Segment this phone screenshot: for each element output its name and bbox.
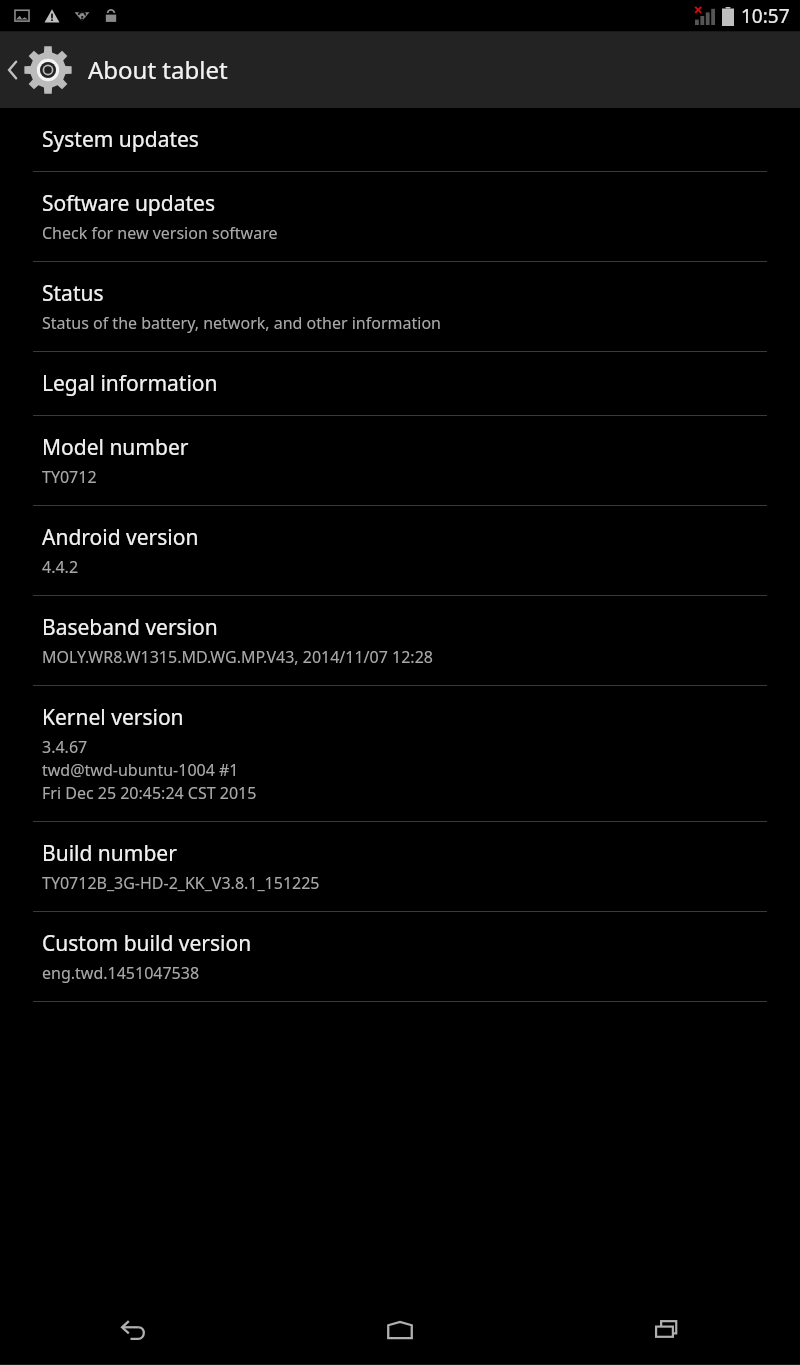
staticText: MOLY.WR8.W1315.MD.WG.MP.V43, 2014/11/07 … bbox=[42, 646, 433, 668]
button[interactable]: Recent apps bbox=[533, 1295, 800, 1365]
staticText: System updates bbox=[42, 125, 199, 154]
staticText: About tablet bbox=[88, 53, 228, 86]
button[interactable]: Model number bbox=[0, 416, 800, 505]
staticText: 10:57 bbox=[741, 3, 790, 29]
button[interactable]: Kernel version bbox=[0, 686, 800, 821]
staticText: TY0712B_3G-HD-2_KK_V3.8.1_151225 bbox=[42, 872, 320, 894]
button[interactable]: Back bbox=[0, 1295, 266, 1365]
button[interactable]: Android version bbox=[0, 506, 800, 595]
button[interactable]: Baseband version bbox=[0, 596, 800, 685]
button[interactable]: Software updates bbox=[0, 172, 800, 261]
staticText: Software updates bbox=[42, 189, 215, 218]
button[interactable]: Status bbox=[0, 262, 800, 351]
staticText: Kernel version bbox=[42, 703, 184, 732]
staticText: 3.4.67 bbox=[42, 736, 88, 758]
staticText: twd@twd-ubuntu-1004 #1 bbox=[42, 759, 239, 781]
staticText: TY0712 bbox=[42, 466, 97, 488]
button[interactable]: System updates bbox=[0, 108, 800, 171]
staticText: Custom build version bbox=[42, 929, 252, 958]
button[interactable]: Navigate up, About tablet bbox=[0, 31, 244, 108]
staticText: Fri Dec 25 20:45:24 CST 2015 bbox=[42, 782, 257, 804]
staticText: Check for new version software bbox=[42, 222, 278, 244]
staticText: Build number bbox=[42, 839, 177, 868]
button[interactable]: Custom build version bbox=[0, 912, 800, 1001]
staticText: eng.twd.1451047538 bbox=[42, 962, 200, 984]
button[interactable]: Legal information bbox=[0, 352, 800, 415]
staticText: Baseband version bbox=[42, 613, 218, 642]
staticText: 4.4.2 bbox=[42, 556, 79, 578]
button[interactable]: Build number bbox=[0, 822, 800, 911]
staticText: Status bbox=[42, 279, 104, 308]
staticText: Model number bbox=[42, 433, 189, 462]
button[interactable]: Home bbox=[266, 1295, 533, 1365]
staticText: Android version bbox=[42, 523, 199, 552]
staticText: Status of the battery, network, and othe… bbox=[42, 312, 441, 334]
staticText: Legal information bbox=[42, 369, 218, 398]
